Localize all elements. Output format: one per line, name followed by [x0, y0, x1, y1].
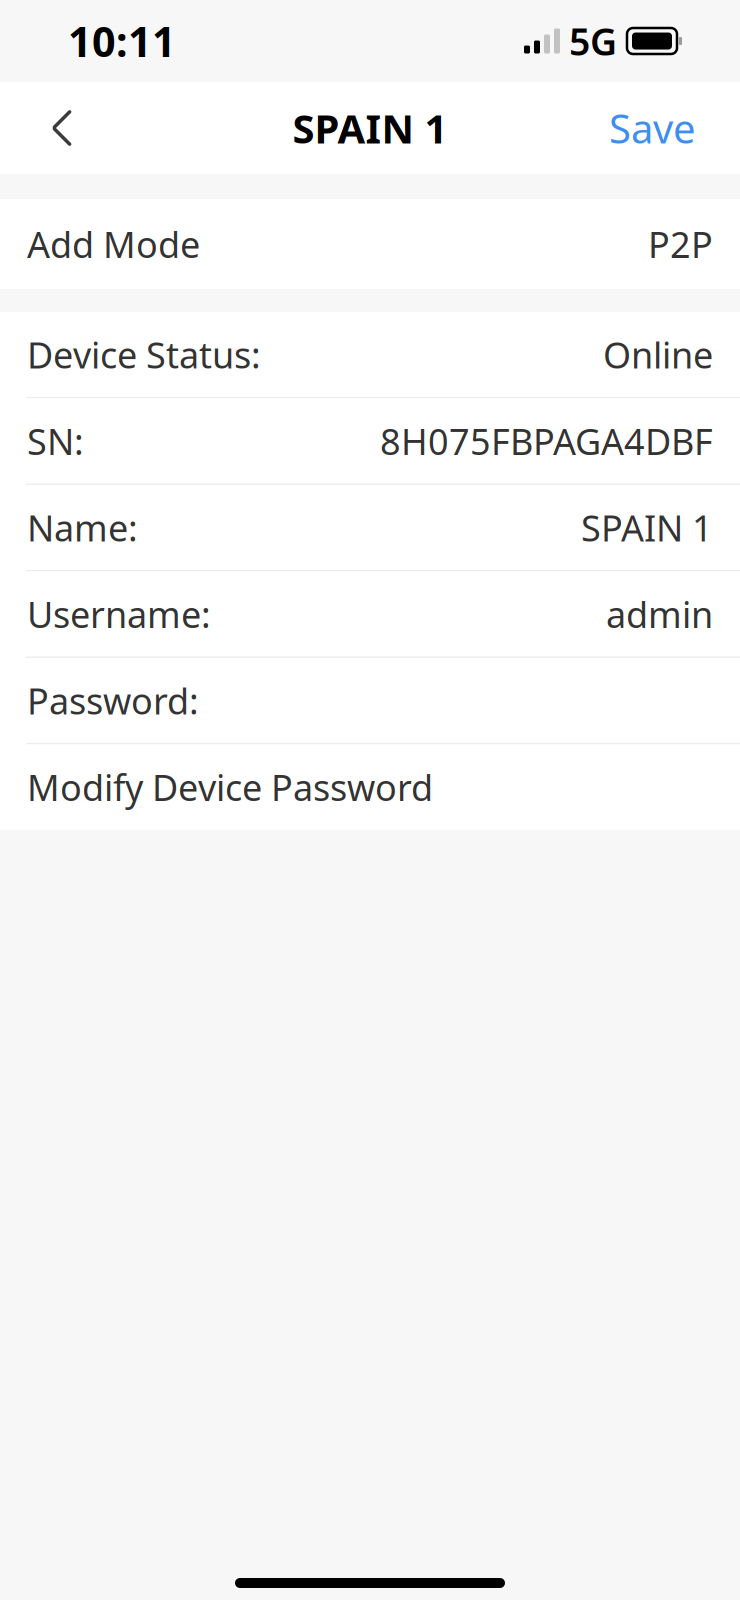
button[interactable]: Username:	[0, 571, 740, 656]
staticText: Username:	[27, 590, 211, 638]
button[interactable]: Device Status:	[0, 312, 740, 397]
button[interactable]: SN:	[0, 398, 740, 483]
button[interactable]: Password:	[0, 658, 740, 743]
button[interactable]: Back	[24, 90, 100, 166]
staticText: Password:	[27, 677, 199, 724]
staticText: Save	[609, 101, 696, 154]
staticText: P2P	[648, 220, 713, 268]
staticText: SN:	[27, 417, 84, 465]
button[interactable]: Name:	[0, 485, 740, 570]
button[interactable]: Modify Device Password	[0, 744, 740, 829]
staticText: Name:	[27, 504, 138, 551]
staticText: admin	[606, 590, 713, 638]
button[interactable]: Save	[589, 90, 716, 166]
staticText: 10:11	[68, 14, 176, 68]
staticText: SPAIN 1	[581, 504, 713, 551]
staticText: SPAIN 1	[292, 101, 447, 154]
staticText: Device Status:	[27, 331, 261, 378]
staticText: Modify Device Password	[27, 763, 433, 811]
staticText: 8H075FBPAGA4DBF	[380, 417, 713, 465]
staticText: Add Mode	[27, 220, 200, 268]
staticText: 5G	[569, 16, 617, 66]
staticText: Online	[603, 331, 713, 378]
button[interactable]: Add Mode	[0, 199, 740, 289]
